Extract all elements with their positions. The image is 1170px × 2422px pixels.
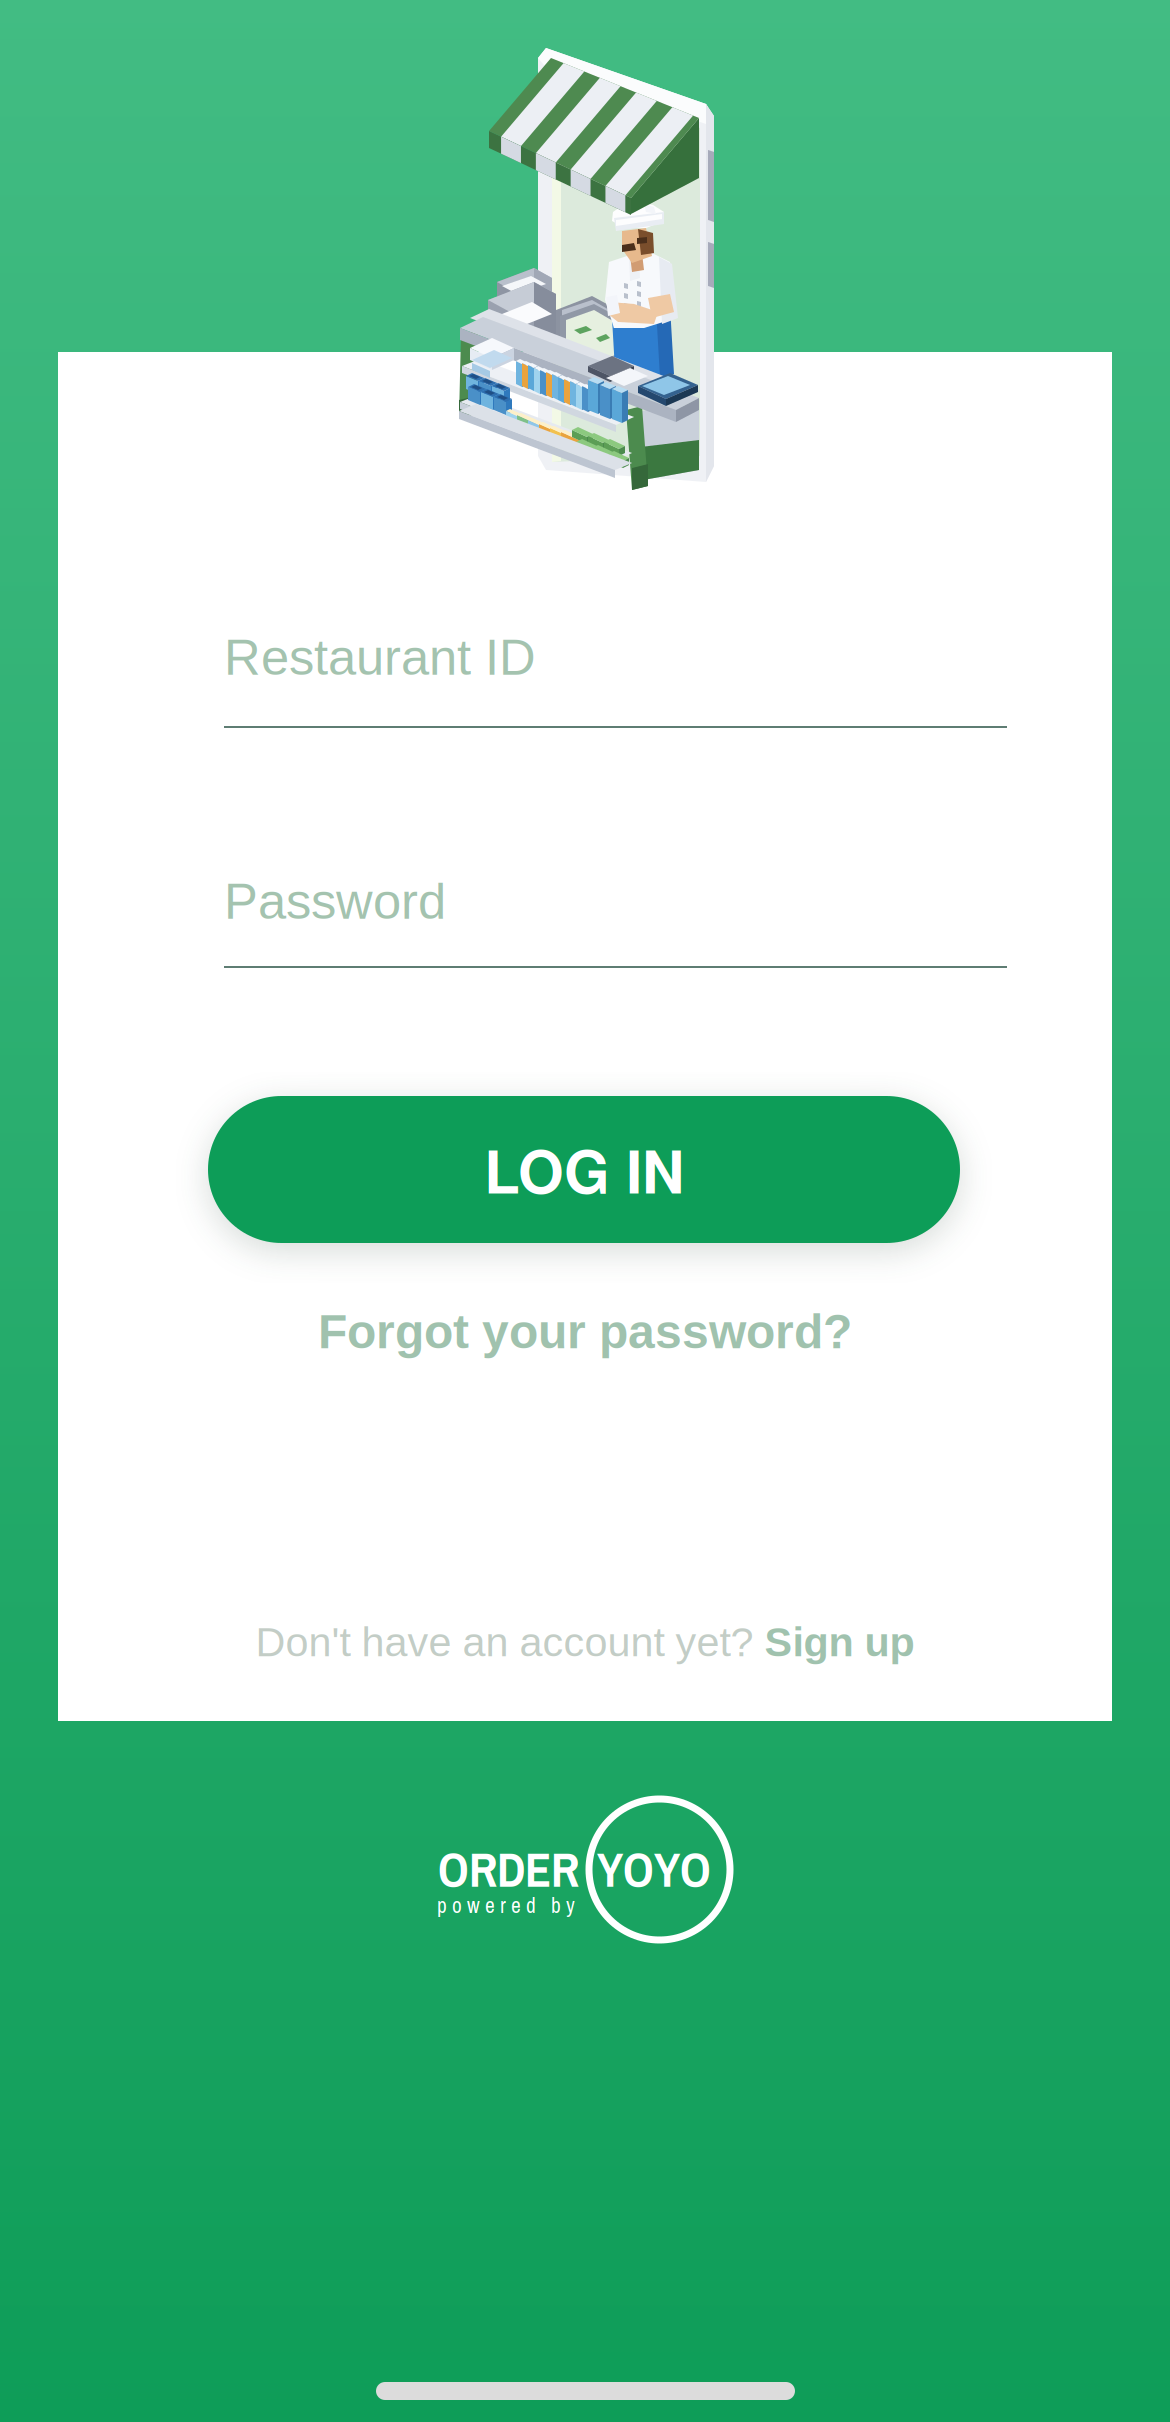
staticText: Forgot your password? — [318, 1305, 852, 1358]
staticText: Password — [224, 873, 446, 930]
button[interactable]: Don't have an account yet? — [58, 1619, 1112, 1665]
staticText: p o w e r e d b y — [437, 1891, 575, 1920]
staticText: Don't have an account yet? — [255, 1619, 753, 1665]
button[interactable]: Forgot your password? — [58, 1305, 1112, 1358]
staticText: ORDER — [438, 1837, 579, 1902]
staticText: Sign up — [764, 1619, 914, 1665]
button[interactable]: LOG IN — [208, 1096, 960, 1243]
staticText: Restaurant ID — [224, 629, 536, 686]
staticText: YOYO — [597, 1837, 711, 1902]
staticText: LOG IN — [484, 1127, 684, 1211]
